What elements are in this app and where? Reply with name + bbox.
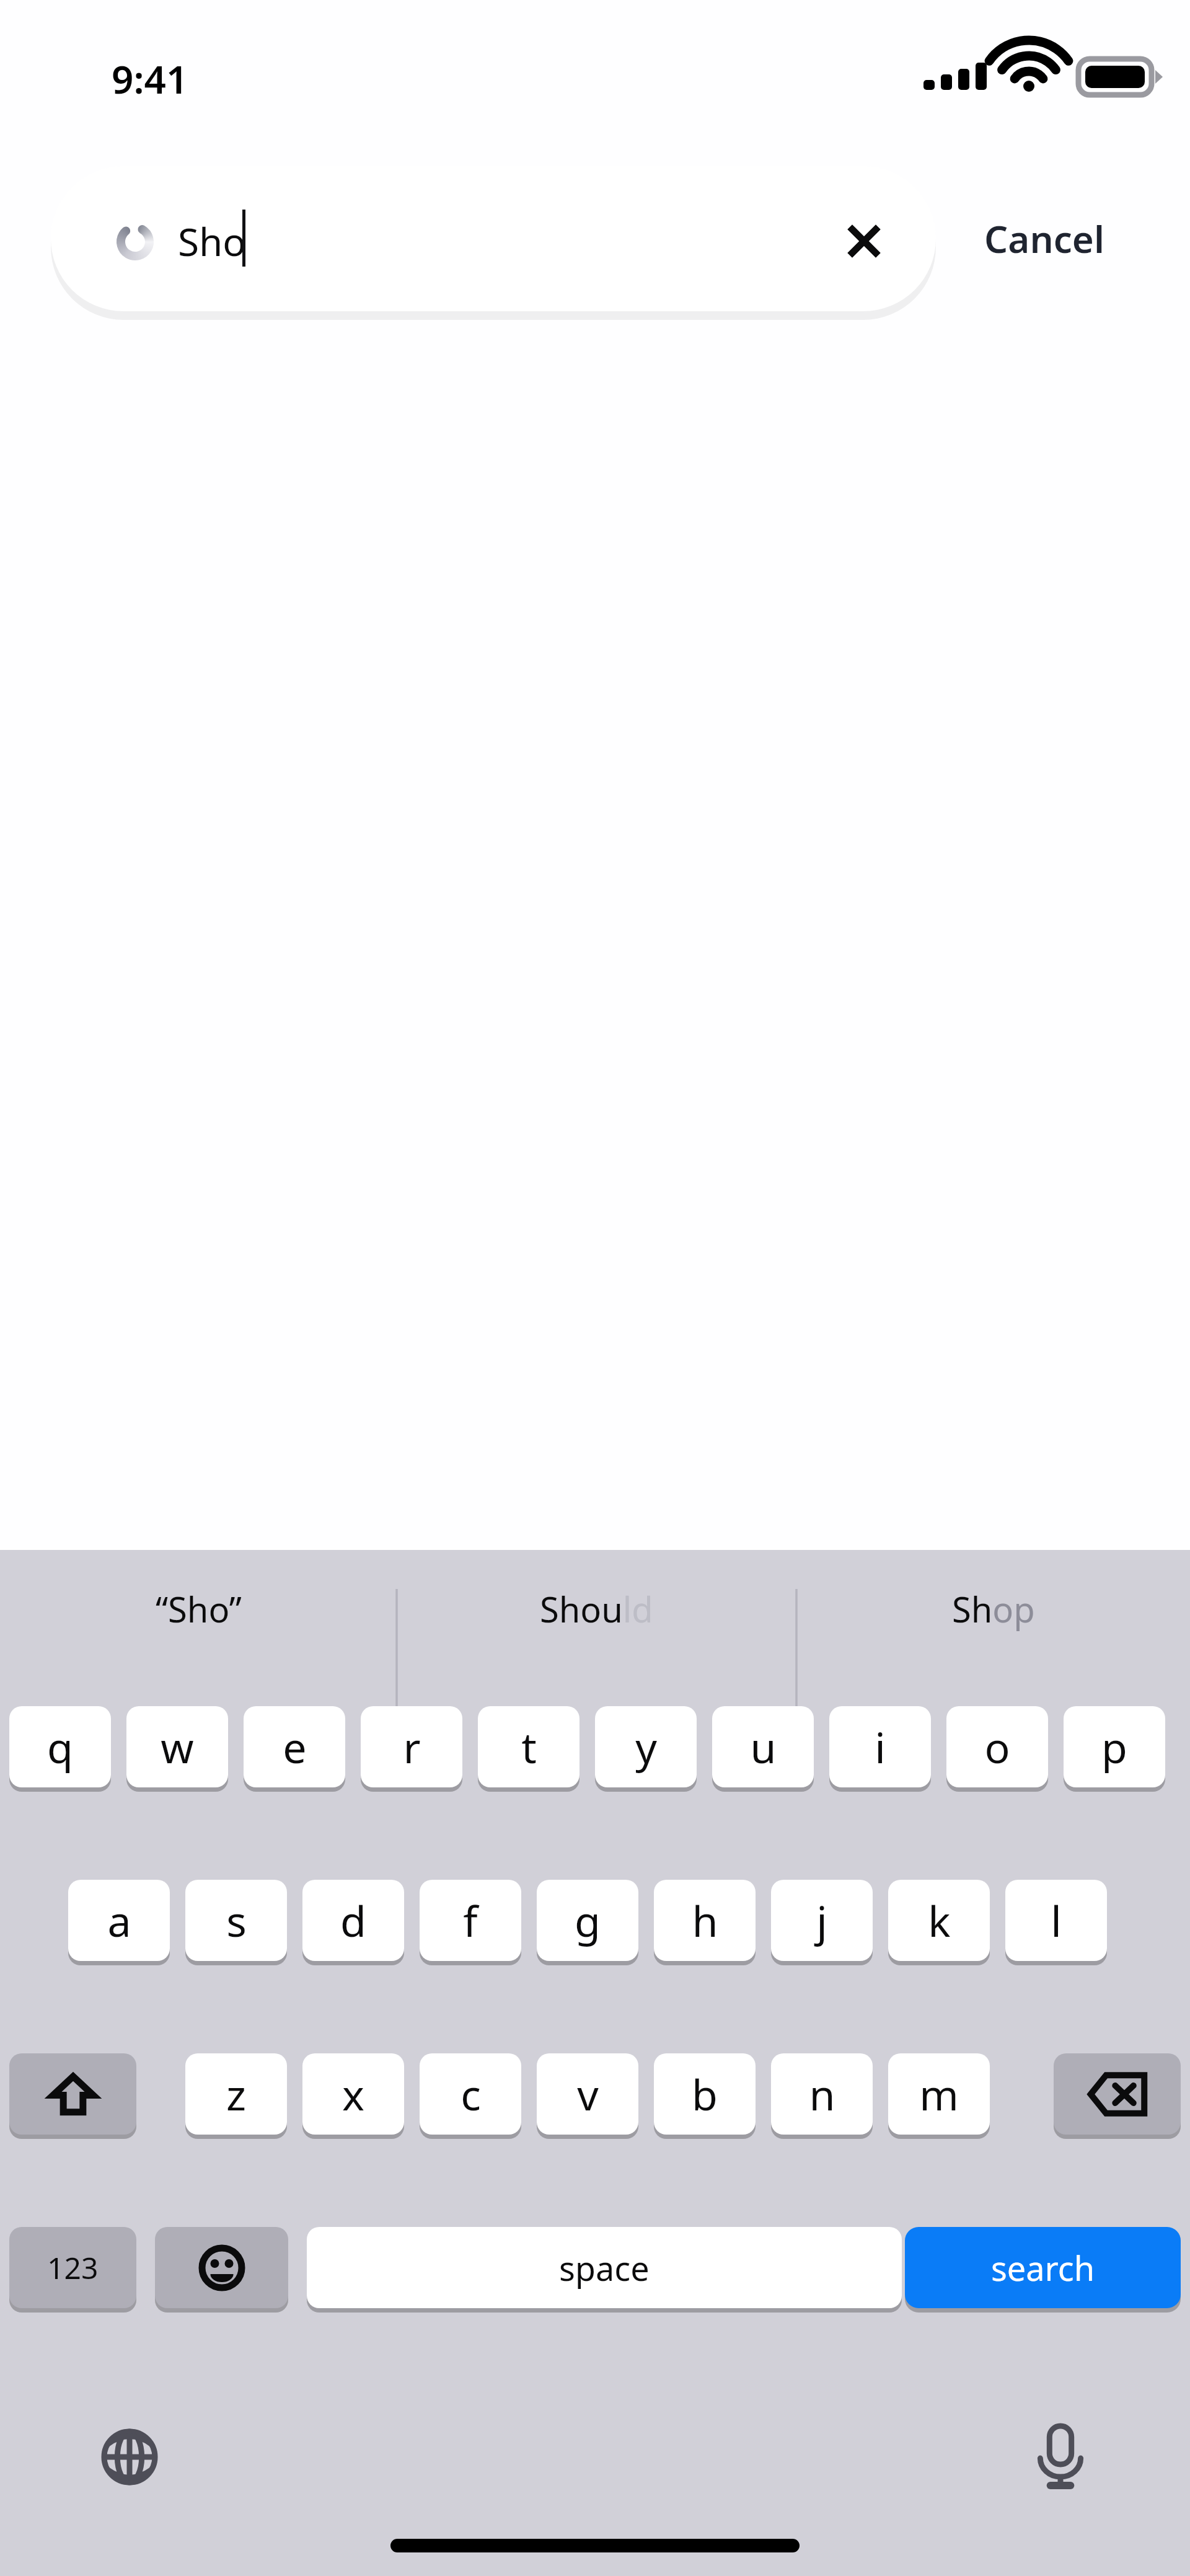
button[interactable]: d [302,1880,404,1961]
button[interactable]: z [185,2053,287,2135]
button[interactable]: p [1064,1706,1165,1787]
button[interactable]: w [126,1706,228,1787]
staticText: g [575,1892,601,1949]
staticText: j [816,1892,827,1949]
staticText: m [919,2065,959,2123]
staticText: space [559,2245,650,2291]
staticText: c [461,2065,481,2123]
button[interactable]: Shop [796,1550,1190,1668]
button[interactable]: c [420,2053,521,2135]
button[interactable]: Should [397,1550,796,1668]
staticText: “Sho” [156,1585,242,1632]
button[interactable]: Change keyboard language [77,2405,182,2509]
button[interactable]: Sho [51,166,936,311]
staticText: h [692,1892,718,1949]
staticText: d [340,1892,366,1949]
button[interactable]: r [361,1706,462,1787]
staticText: e [283,1718,307,1776]
staticText: q [47,1718,73,1776]
button[interactable]: “Sho” [0,1550,397,1668]
button[interactable]: x [302,2053,404,2135]
button[interactable]: Backspace [1054,2053,1181,2135]
staticText: o [984,1718,1010,1776]
staticText: s [226,1892,247,1949]
staticText: w [161,1718,194,1776]
staticText: Should [540,1585,653,1632]
button[interactable]: search [905,2227,1181,2308]
button[interactable]: i [829,1706,931,1787]
button[interactable]: v [537,2053,638,2135]
staticText: p [1101,1718,1127,1776]
staticText: Sho [178,215,246,267]
staticText: f [463,1892,478,1949]
staticText: 9:41 [112,53,188,105]
button[interactable]: l [1005,1880,1107,1961]
button[interactable]: g [537,1880,638,1961]
staticText: x [342,2065,364,2123]
staticText: l [1051,1892,1062,1949]
button[interactable]: t [478,1706,580,1787]
staticText: a [107,1892,131,1949]
button[interactable]: Cancel [967,192,1122,285]
button[interactable]: 123 [9,2227,136,2308]
staticText: search [991,2245,1095,2291]
staticText: r [403,1718,421,1776]
staticText: z [226,2065,246,2123]
button[interactable]: k [888,1880,990,1961]
button[interactable]: h [654,1880,756,1961]
button[interactable]: f [420,1880,521,1961]
button[interactable]: Shift [9,2053,136,2135]
button[interactable]: s [185,1880,287,1961]
staticText: k [928,1892,951,1949]
button[interactable]: Dictation [1008,2405,1113,2509]
staticText: b [692,2065,718,2123]
button[interactable]: Emoji [155,2227,288,2308]
button[interactable]: space [307,2227,902,2308]
button[interactable]: b [654,2053,756,2135]
button[interactable]: j [771,1880,873,1961]
button[interactable]: u [712,1706,814,1787]
button[interactable]: y [595,1706,697,1787]
staticText: Shop [952,1585,1035,1632]
button[interactable]: m [888,2053,990,2135]
button[interactable]: q [9,1706,111,1787]
staticText: y [635,1718,657,1776]
button[interactable]: n [771,2053,873,2135]
button[interactable]: o [946,1706,1048,1787]
button[interactable]: e [244,1706,345,1787]
staticText: t [521,1718,537,1776]
staticText: 123 [47,2247,99,2288]
staticText: Cancel [984,213,1104,264]
button[interactable]: a [68,1880,170,1961]
staticText: i [875,1718,886,1776]
button[interactable]: Clear text [838,215,890,267]
staticText: v [577,2065,599,2123]
staticText: u [750,1718,777,1776]
staticText: n [809,2065,835,2123]
